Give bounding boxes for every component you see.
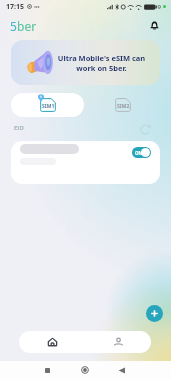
staticText: ber [17, 18, 37, 34]
staticText: SIM2 [117, 103, 130, 110]
button[interactable]: Profile [85, 331, 151, 353]
button[interactable]: Home [19, 331, 85, 353]
button[interactable]: SIM2 [86, 93, 159, 117]
staticText: 5 [10, 18, 17, 34]
button[interactable]: ON [132, 147, 151, 158]
button[interactable]: Add eSIM [146, 305, 163, 322]
staticText: 99 [154, 3, 161, 11]
staticText: SIM1 [42, 103, 55, 110]
staticText: ON [135, 150, 143, 156]
staticText: Ultra Mobile's eSIM can work on 5ber. [49, 53, 154, 73]
button[interactable]: Refresh [139, 123, 152, 136]
button[interactable]: Ultra Mobile's eSIM can work on 5ber. [11, 40, 160, 85]
button[interactable]: ON [11, 141, 160, 184]
staticText: EID [14, 124, 24, 132]
staticText: 17:15 [6, 2, 24, 12]
button[interactable]: Notifications [147, 18, 162, 33]
button[interactable]: SIM1 [11, 93, 84, 117]
